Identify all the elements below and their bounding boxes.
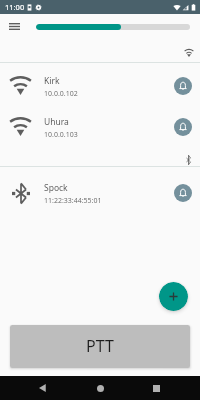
button[interactable]: Notify: [174, 77, 192, 95]
staticText: 11:00: [5, 2, 25, 12]
button[interactable]: Uhura: [0, 104, 200, 145]
staticText: PTT: [86, 335, 114, 357]
button[interactable]: Home: [90, 378, 110, 398]
button[interactable]: Spock: [0, 167, 200, 215]
button[interactable]: Back: [32, 378, 52, 398]
staticText: Kirk: [44, 75, 60, 87]
staticText: 10.0.0.103: [44, 130, 78, 140]
button[interactable]: Menu: [5, 17, 23, 35]
button[interactable]: Notify: [174, 118, 192, 136]
staticText: Uhura: [44, 116, 69, 128]
button[interactable]: Kirk: [0, 63, 200, 104]
staticText: 11:22:33:44:55:01: [44, 196, 102, 206]
staticText: 10.0.0.102: [44, 89, 78, 99]
staticText: Spock: [44, 182, 68, 194]
button[interactable]: PTT: [10, 325, 190, 368]
button[interactable]: Notify: [174, 184, 192, 202]
button[interactable]: Add: [159, 282, 188, 311]
button[interactable]: Recents: [146, 378, 166, 398]
